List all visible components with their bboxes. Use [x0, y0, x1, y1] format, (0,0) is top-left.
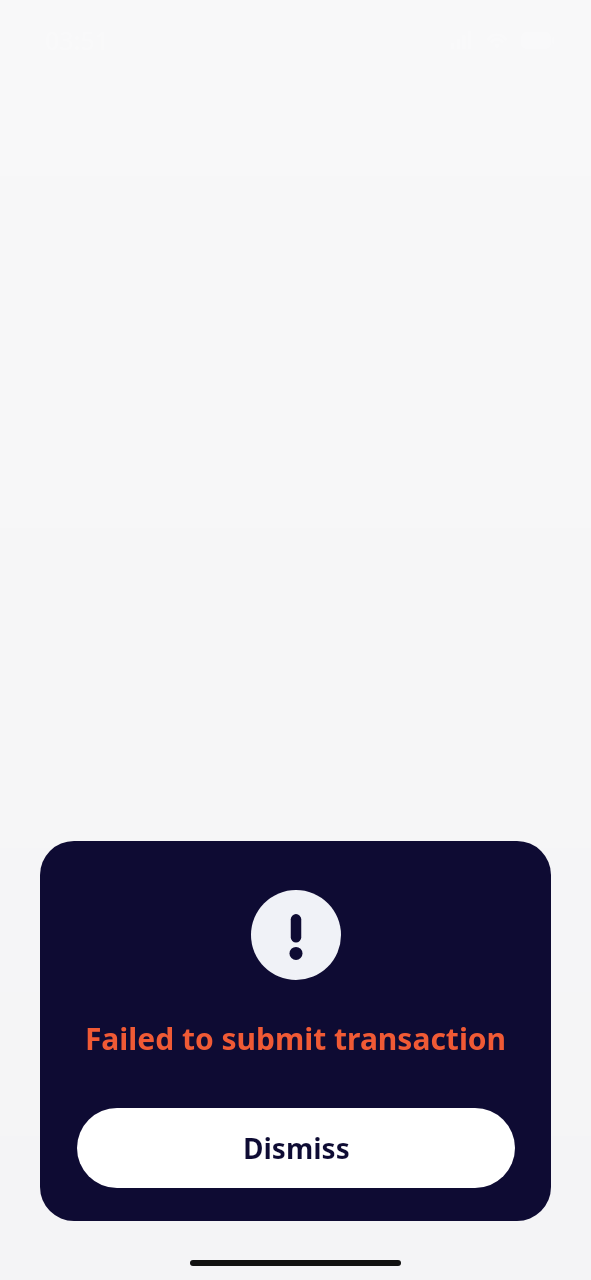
staticText: Dismiss	[243, 1129, 350, 1167]
button[interactable]: Dismiss	[77, 1108, 515, 1188]
staticText: Failed to submit transaction	[50, 1018, 541, 1059]
